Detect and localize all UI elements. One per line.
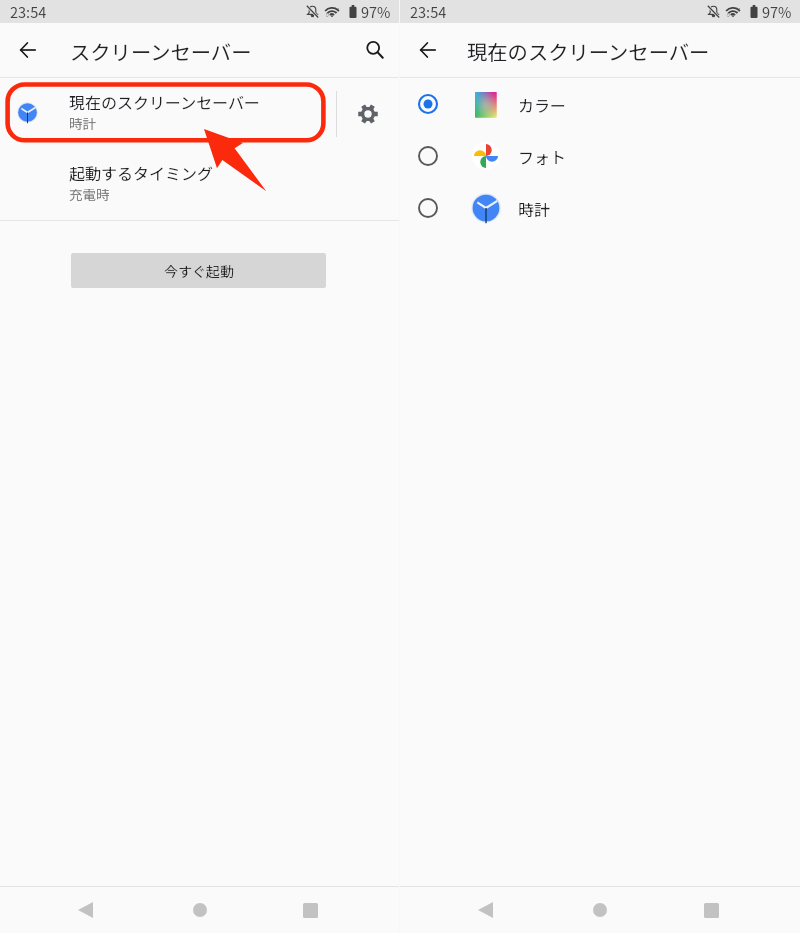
staticText: 今すぐ起動 [164, 261, 234, 281]
button[interactable]: 起動するタイミング [0, 149, 399, 220]
staticText: 23:54 [10, 1, 47, 22]
button[interactable]: カラー [400, 78, 800, 130]
staticText: 現在のスクリーンセーバー [69, 90, 261, 113]
staticText: 97% [361, 1, 391, 22]
button[interactable]: 現在のスクリーンセーバー [0, 78, 399, 149]
button[interactable]: 戻る [0, 23, 55, 77]
staticText: 充電時 [69, 184, 110, 204]
button[interactable]: ホーム [170, 887, 230, 933]
staticText: フォト [518, 145, 567, 168]
staticText: 23:54 [410, 1, 447, 22]
staticText: 時計 [69, 113, 96, 133]
staticText: カラー [518, 93, 567, 116]
button[interactable]: 戻る [400, 887, 570, 933]
staticText: 起動するタイミング [69, 161, 214, 184]
button[interactable]: フォト [400, 130, 800, 182]
staticText: 現在のスクリーンセーバー [467, 36, 710, 65]
button[interactable]: 戻る [0, 887, 170, 933]
staticText: スクリーンセーバー [70, 36, 252, 65]
button[interactable]: 履歴 [230, 887, 399, 933]
button[interactable]: ホーム [570, 887, 630, 933]
button[interactable]: 時計 [400, 182, 800, 234]
button[interactable]: 戻る [400, 23, 455, 77]
button[interactable]: 今すぐ起動 [71, 253, 326, 288]
button[interactable]: 検索 [351, 23, 399, 77]
button[interactable]: 設定 [337, 78, 399, 149]
staticText: 97% [762, 1, 792, 22]
button[interactable]: 履歴 [630, 887, 800, 933]
staticText: 時計 [518, 197, 551, 220]
